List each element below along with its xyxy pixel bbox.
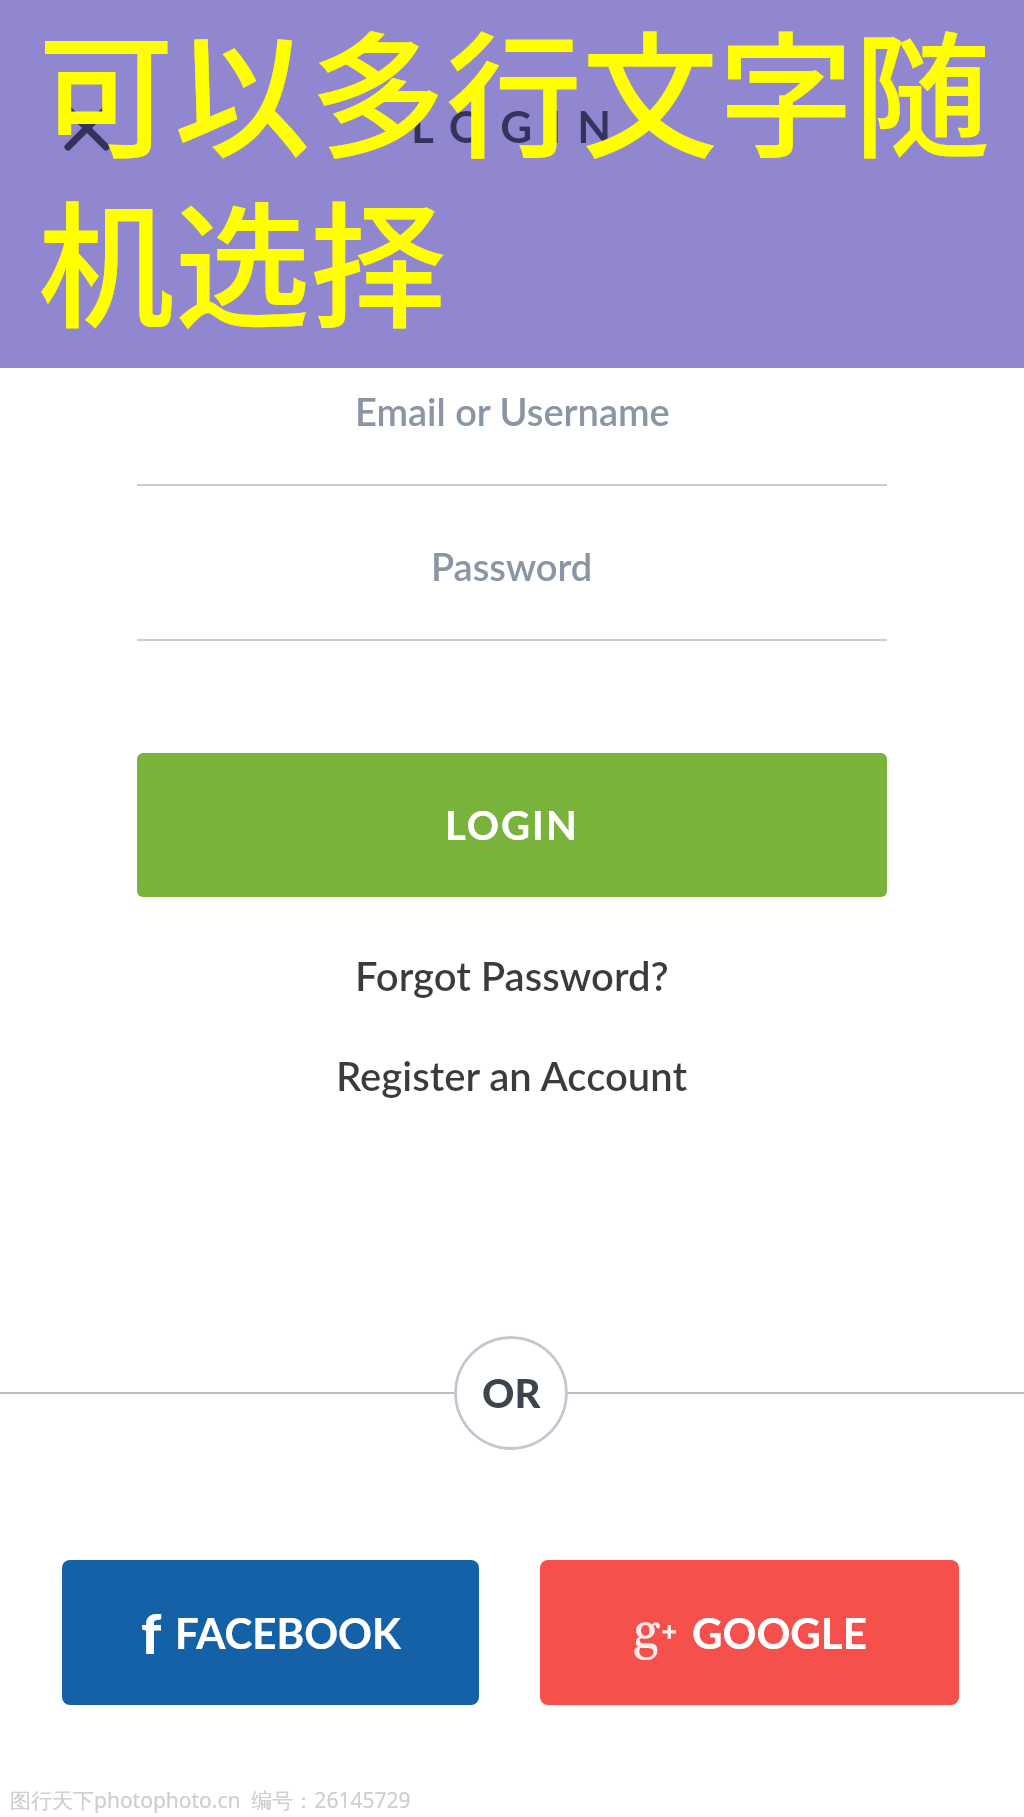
button[interactable]: f [62,1560,479,1705]
button[interactable]: g [540,1560,959,1705]
staticText: FACEBOOK [175,1608,401,1658]
staticText: LOGIN [445,801,579,849]
staticText: + [661,1615,678,1648]
staticText: OR [482,1369,541,1417]
button[interactable]: Forgot Password? [355,952,669,1000]
staticText: Register an Account [336,1052,688,1100]
staticText: 图行天下photophoto.cn 编号：26145729 [10,1786,411,1815]
button[interactable] [62,103,112,153]
button[interactable]: Register an Account [336,1052,688,1100]
staticText: GOOGLE [692,1608,867,1658]
staticText: g [633,1600,660,1666]
staticText: Forgot Password? [355,952,669,1000]
button[interactable]: LOGIN [137,753,887,897]
staticText: LOGIN [411,100,628,153]
staticText: Password [431,543,593,589]
staticText: Email or Username [355,388,670,434]
staticText: f [141,1599,162,1666]
staticText: 可以多行文字随 机选择 [38,0,990,356]
